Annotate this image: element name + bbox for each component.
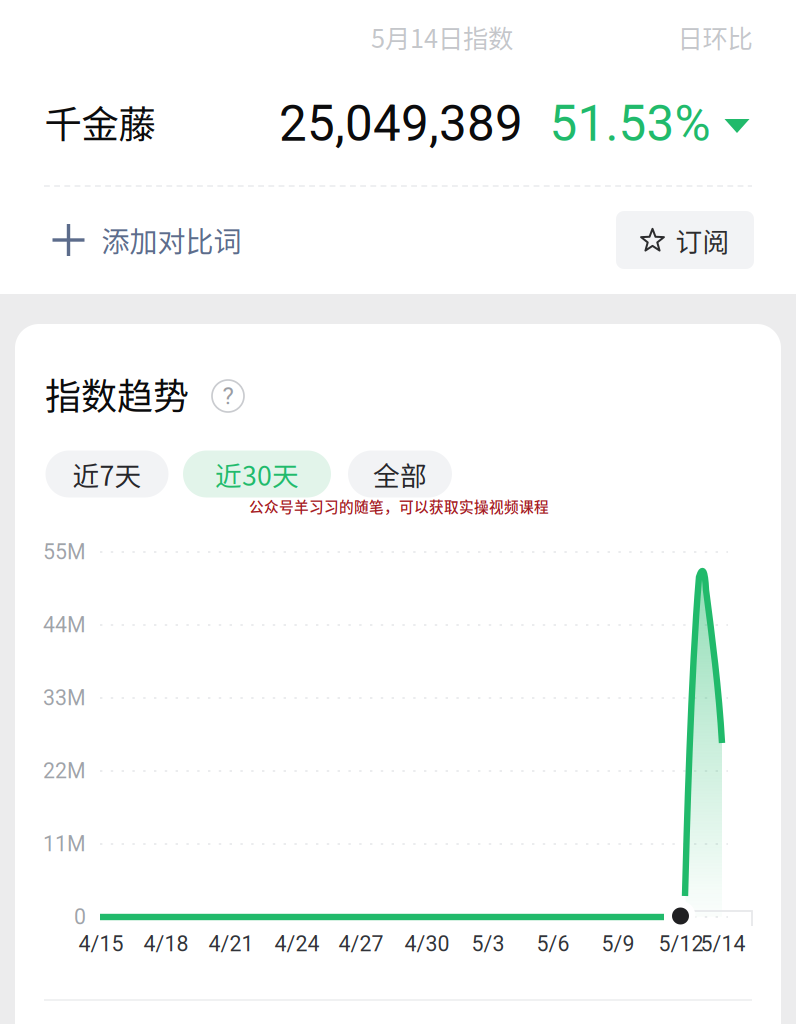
staticText: 4/21 xyxy=(208,931,253,956)
staticText: 近30天 xyxy=(215,455,299,493)
staticText: 51.53% xyxy=(549,95,710,153)
staticText: 指数趋势 xyxy=(45,368,189,420)
staticText: 添加对比词 xyxy=(101,220,241,260)
staticText: 千金藤 xyxy=(44,95,155,149)
staticText: 4/27 xyxy=(338,931,383,956)
staticText: 5/9 xyxy=(601,931,634,956)
button[interactable]: 订阅 xyxy=(616,211,754,269)
staticText: 日环比 xyxy=(677,19,752,55)
staticText: 11M xyxy=(43,831,86,856)
staticText: 5/14 xyxy=(700,931,745,956)
staticText: 33M xyxy=(43,685,86,710)
staticText: 4/30 xyxy=(404,931,449,956)
staticText: ? xyxy=(222,382,233,410)
staticText: 公众号羊习习的随笔，可以获取实操视频课程 xyxy=(249,495,549,517)
button[interactable]: 近30天 xyxy=(183,450,331,497)
staticText: 5月14日指数 xyxy=(371,19,513,55)
button[interactable]: 添加对比词 xyxy=(52,207,241,273)
staticText: 0 xyxy=(74,904,86,929)
button[interactable]: 近7天 xyxy=(45,450,168,497)
staticText: 5/6 xyxy=(536,931,569,956)
button[interactable]: 全部 xyxy=(348,450,452,497)
staticText: 4/18 xyxy=(143,931,188,956)
staticText: 全部 xyxy=(373,455,427,493)
staticText: 4/15 xyxy=(78,931,123,956)
staticText: 订阅 xyxy=(675,221,729,259)
staticText: 近7天 xyxy=(72,455,141,493)
staticText: 44M xyxy=(43,612,86,637)
staticText: 5/3 xyxy=(471,931,504,956)
staticText: 55M xyxy=(43,539,86,564)
staticText: 4/24 xyxy=(274,931,319,956)
staticText: 22M xyxy=(43,758,86,783)
staticText: 25,049,389 xyxy=(279,95,523,153)
staticText: 5/12 xyxy=(658,931,703,956)
button[interactable]: About index trend xyxy=(212,380,244,412)
